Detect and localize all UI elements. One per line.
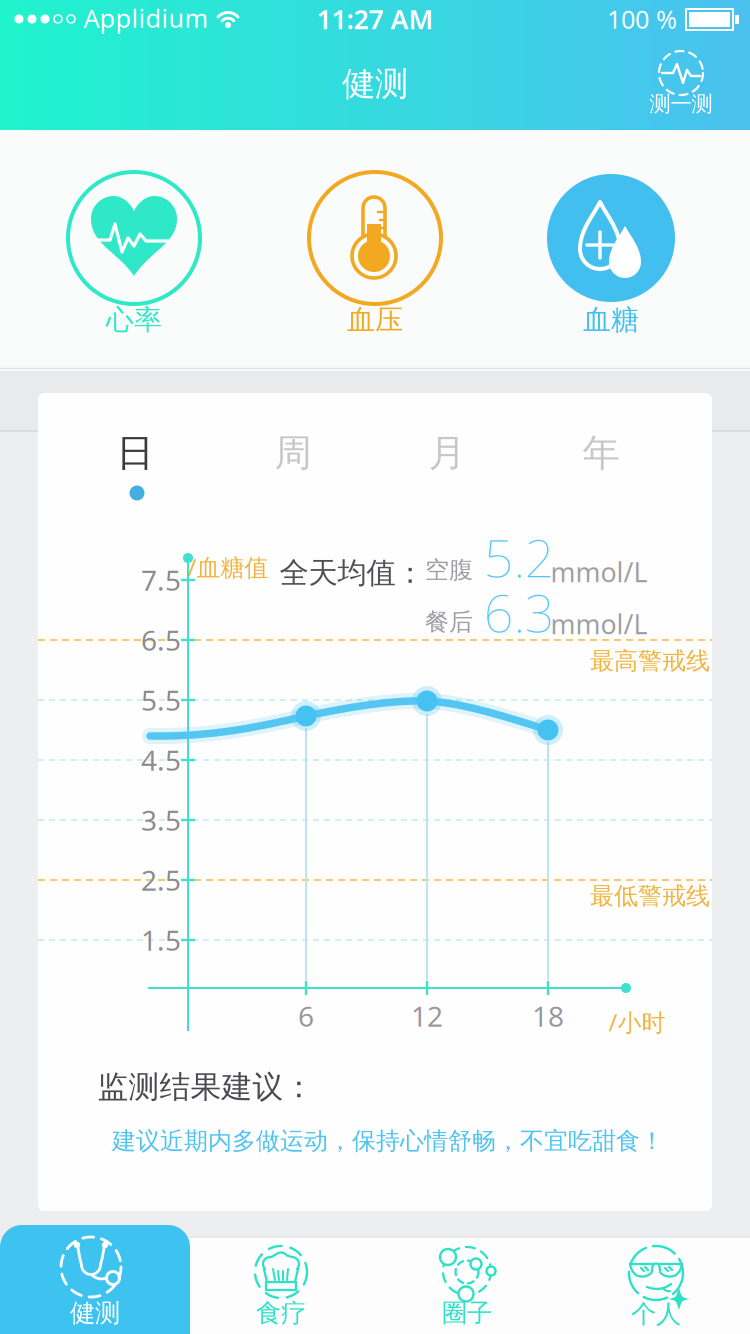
staticText: 6.3 bbox=[483, 577, 554, 647]
staticText: 全天均值： bbox=[279, 555, 424, 591]
button[interactable]: 健测 bbox=[0, 1225, 190, 1334]
staticText: 日 bbox=[116, 430, 153, 476]
staticText: Applidium bbox=[83, 1, 208, 35]
staticText: 2.5 bbox=[141, 861, 181, 899]
staticText: 餐后 bbox=[425, 607, 473, 637]
staticText: /血糖值 bbox=[187, 551, 268, 583]
button[interactable]: 血糖 bbox=[531, 160, 691, 350]
staticText: 最低警戒线 bbox=[590, 881, 710, 911]
staticText: 6 bbox=[298, 997, 314, 1035]
button[interactable]: 圈子 bbox=[382, 1235, 552, 1334]
staticText: 1.5 bbox=[141, 921, 181, 959]
staticText: 11:27 AM bbox=[316, 1, 433, 37]
staticText: 7.5 bbox=[141, 561, 181, 599]
staticText: 12 bbox=[411, 997, 443, 1035]
staticText: 食疗 bbox=[256, 1297, 306, 1328]
staticText: 血压 bbox=[347, 303, 403, 337]
staticText: mmol/L bbox=[550, 554, 647, 590]
staticText: 4.5 bbox=[141, 741, 181, 779]
staticText: 心率 bbox=[106, 303, 162, 337]
staticText: 18 bbox=[532, 997, 564, 1035]
button[interactable]: 食疗 bbox=[196, 1235, 366, 1334]
staticText: 血糖 bbox=[583, 303, 639, 337]
staticText: 3.5 bbox=[141, 801, 181, 839]
staticText: 5.5 bbox=[141, 681, 181, 719]
button[interactable]: 测一测 bbox=[640, 45, 722, 117]
staticText: 5.2 bbox=[483, 522, 554, 592]
staticText: 监测结果建议： bbox=[97, 1068, 314, 1106]
button[interactable]: 心率 bbox=[54, 160, 214, 350]
button[interactable]: 月 bbox=[392, 418, 502, 488]
staticText: /小时 bbox=[608, 1006, 665, 1038]
staticText: 周 bbox=[274, 430, 311, 476]
button[interactable]: 血压 bbox=[295, 160, 455, 350]
button[interactable]: 日 bbox=[80, 418, 190, 488]
staticText: 圈子 bbox=[442, 1297, 492, 1328]
staticText: 健测 bbox=[70, 1297, 120, 1328]
staticText: mmol/L bbox=[550, 606, 647, 642]
staticText: 100 % bbox=[607, 2, 677, 36]
staticText: 年 bbox=[582, 430, 619, 476]
button[interactable]: 年 bbox=[546, 418, 656, 488]
staticText: 个人 bbox=[631, 1298, 681, 1329]
staticText: 6.5 bbox=[141, 621, 181, 659]
staticText: 健测 bbox=[342, 63, 408, 104]
staticText: 最高警戒线 bbox=[590, 646, 710, 676]
staticText: 建议近期内多做运动，保持心情舒畅，不宜吃甜食！ bbox=[112, 1126, 664, 1156]
button[interactable]: 个人 bbox=[571, 1235, 741, 1334]
staticText: 月 bbox=[428, 430, 465, 476]
staticText: 空腹 bbox=[425, 555, 473, 585]
button[interactable]: 周 bbox=[238, 418, 348, 488]
staticText: 测一测 bbox=[649, 91, 712, 117]
